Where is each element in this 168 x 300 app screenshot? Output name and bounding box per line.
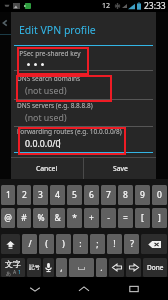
button[interactable]: / <box>22 234 37 254</box>
staticText: * <box>72 212 77 224</box>
button[interactable]: = <box>118 208 133 228</box>
staticText: 5 <box>72 189 77 201</box>
button[interactable]: - <box>101 208 116 228</box>
button[interactable]: Cancel <box>11 158 83 179</box>
staticText: , <box>60 262 63 274</box>
button[interactable]: 6 <box>84 185 99 205</box>
button[interactable]: Home <box>69 277 99 300</box>
staticText: 文字 <box>5 259 21 269</box>
staticText: (not used) <box>25 112 67 124</box>
staticText: 1 <box>6 189 11 201</box>
button[interactable]: ( <box>39 234 54 254</box>
button[interactable]: Input mode <box>1 258 25 277</box>
button[interactable]: @ <box>1 208 15 228</box>
staticText: 12 <box>102 1 111 11</box>
staticText: ) <box>62 238 65 250</box>
button[interactable]: & <box>50 208 65 228</box>
button[interactable]: Symbols <box>27 258 41 277</box>
staticText: @ <box>4 212 12 224</box>
staticText: IPSec pre-shared key <box>17 49 81 58</box>
staticText: Edit VPN profile <box>19 23 96 37</box>
button[interactable]: Move left <box>109 258 124 277</box>
button[interactable]: 5 <box>67 185 82 205</box>
staticText: [ <box>141 212 144 224</box>
staticText: Forwarding routes (e.g. 10.0.0.0/8) <box>17 127 122 136</box>
staticText: & <box>54 212 61 224</box>
staticText: 9 <box>140 189 145 201</box>
button[interactable]: Backspace <box>141 234 167 254</box>
staticText: 1 <box>18 269 21 276</box>
staticText: . <box>100 262 103 274</box>
button[interactable]: 8 <box>118 185 133 205</box>
staticText: ; <box>96 238 99 250</box>
button[interactable]: Voice input <box>43 258 54 277</box>
button[interactable]: ? <box>124 234 139 254</box>
staticText: ⌴ <box>78 263 85 272</box>
staticText: DNS servers (e.g. 8.8.8.8) <box>17 101 93 110</box>
button[interactable]: ; <box>90 234 105 254</box>
staticText: A <box>13 269 17 276</box>
staticText: = <box>123 212 128 224</box>
button[interactable]: Recents <box>119 277 149 300</box>
button[interactable]: Back <box>20 277 50 300</box>
staticText: % <box>37 212 45 224</box>
staticText: DNS search domains <box>17 74 81 83</box>
staticText: # <box>21 212 27 224</box>
staticText: 0.0.0.0/0 <box>25 138 61 150</box>
staticText: 3 <box>38 189 43 201</box>
staticText: - <box>107 212 110 224</box>
button[interactable]: : <box>73 234 88 254</box>
staticText: 23:33 <box>144 0 166 12</box>
button[interactable]: [ <box>135 208 150 228</box>
button[interactable]: ! <box>107 234 122 254</box>
button[interactable]: * <box>67 208 82 228</box>
button[interactable]: , <box>56 258 67 277</box>
staticText: Save <box>113 164 128 173</box>
button[interactable]: 2 <box>17 185 31 205</box>
button[interactable]: + <box>84 208 99 228</box>
button[interactable]: ) <box>56 234 71 254</box>
button[interactable]: % <box>33 208 48 228</box>
staticText: ] <box>158 212 161 224</box>
staticText: 7 <box>106 189 111 201</box>
button[interactable]: 3 <box>33 185 48 205</box>
button[interactable]: 4 <box>50 185 65 205</box>
staticText: 8 <box>123 189 128 201</box>
button[interactable]: 7 <box>101 185 116 205</box>
button[interactable]: ] <box>152 208 167 228</box>
staticText: 6 <box>89 189 94 201</box>
staticText: 記号 <box>29 264 40 271</box>
button[interactable]: # <box>17 208 31 228</box>
staticText: : <box>79 238 82 250</box>
button[interactable]: 1 <box>1 185 15 205</box>
button[interactable]: 9 <box>135 185 150 205</box>
staticText: 0 <box>157 189 162 201</box>
button[interactable]: 0 <box>152 185 167 205</box>
staticText: / <box>28 238 32 250</box>
staticText: (not used) <box>25 85 67 97</box>
button[interactable]: Done <box>143 258 167 277</box>
staticText: 2 <box>22 189 27 201</box>
staticText: ( <box>45 238 48 250</box>
staticText: Done <box>147 263 164 272</box>
staticText: 4 <box>55 189 60 201</box>
button[interactable]: . <box>96 258 107 277</box>
staticText: + <box>89 212 94 224</box>
staticText: ? <box>130 238 134 250</box>
button[interactable]: Move right <box>126 258 141 277</box>
staticText: Cancel <box>36 164 58 173</box>
staticText: ! <box>113 238 116 250</box>
button[interactable]: Save <box>84 158 156 179</box>
button[interactable]: ⌴ <box>69 258 94 277</box>
staticText: あ <box>6 270 12 276</box>
button[interactable]: Shift <box>1 234 20 254</box>
